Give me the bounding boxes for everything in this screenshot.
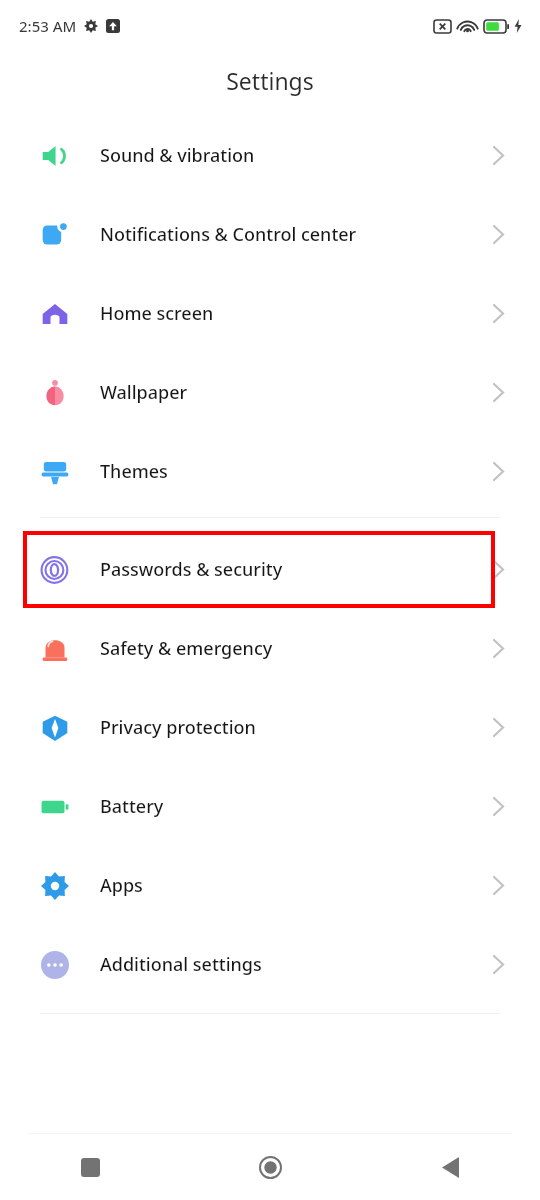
staticText: 2:53 AM <box>19 16 77 36</box>
button[interactable]: Passwords & security <box>0 530 540 609</box>
staticText: Battery <box>100 794 493 819</box>
button[interactable]: Apps <box>0 846 540 925</box>
staticText: Privacy protection <box>100 715 493 740</box>
staticText: Settings <box>226 65 314 96</box>
button[interactable]: Battery <box>0 767 540 846</box>
staticText: Wallpaper <box>100 380 493 405</box>
staticText: Passwords & security <box>100 557 493 582</box>
button[interactable]: Recent apps <box>0 1134 180 1200</box>
button[interactable]: Home screen <box>0 274 540 353</box>
staticText: Apps <box>100 873 493 898</box>
button[interactable]: Home <box>180 1134 360 1200</box>
button[interactable]: Safety & emergency <box>0 609 540 688</box>
staticText: Notifications & Control center <box>100 222 493 247</box>
button[interactable]: Themes <box>0 432 540 511</box>
button[interactable]: Privacy protection <box>0 688 540 767</box>
button[interactable]: Additional settings <box>0 925 540 1004</box>
button[interactable]: Sound & vibration <box>0 116 540 195</box>
button[interactable]: Notifications & Control center <box>0 195 540 274</box>
staticText: Safety & emergency <box>100 636 493 661</box>
staticText: Themes <box>100 459 493 484</box>
staticText: Home screen <box>100 301 493 326</box>
button[interactable]: Back <box>360 1134 540 1200</box>
staticText: Additional settings <box>100 952 493 977</box>
staticText: Sound & vibration <box>100 143 493 168</box>
button[interactable]: Wallpaper <box>0 353 540 432</box>
